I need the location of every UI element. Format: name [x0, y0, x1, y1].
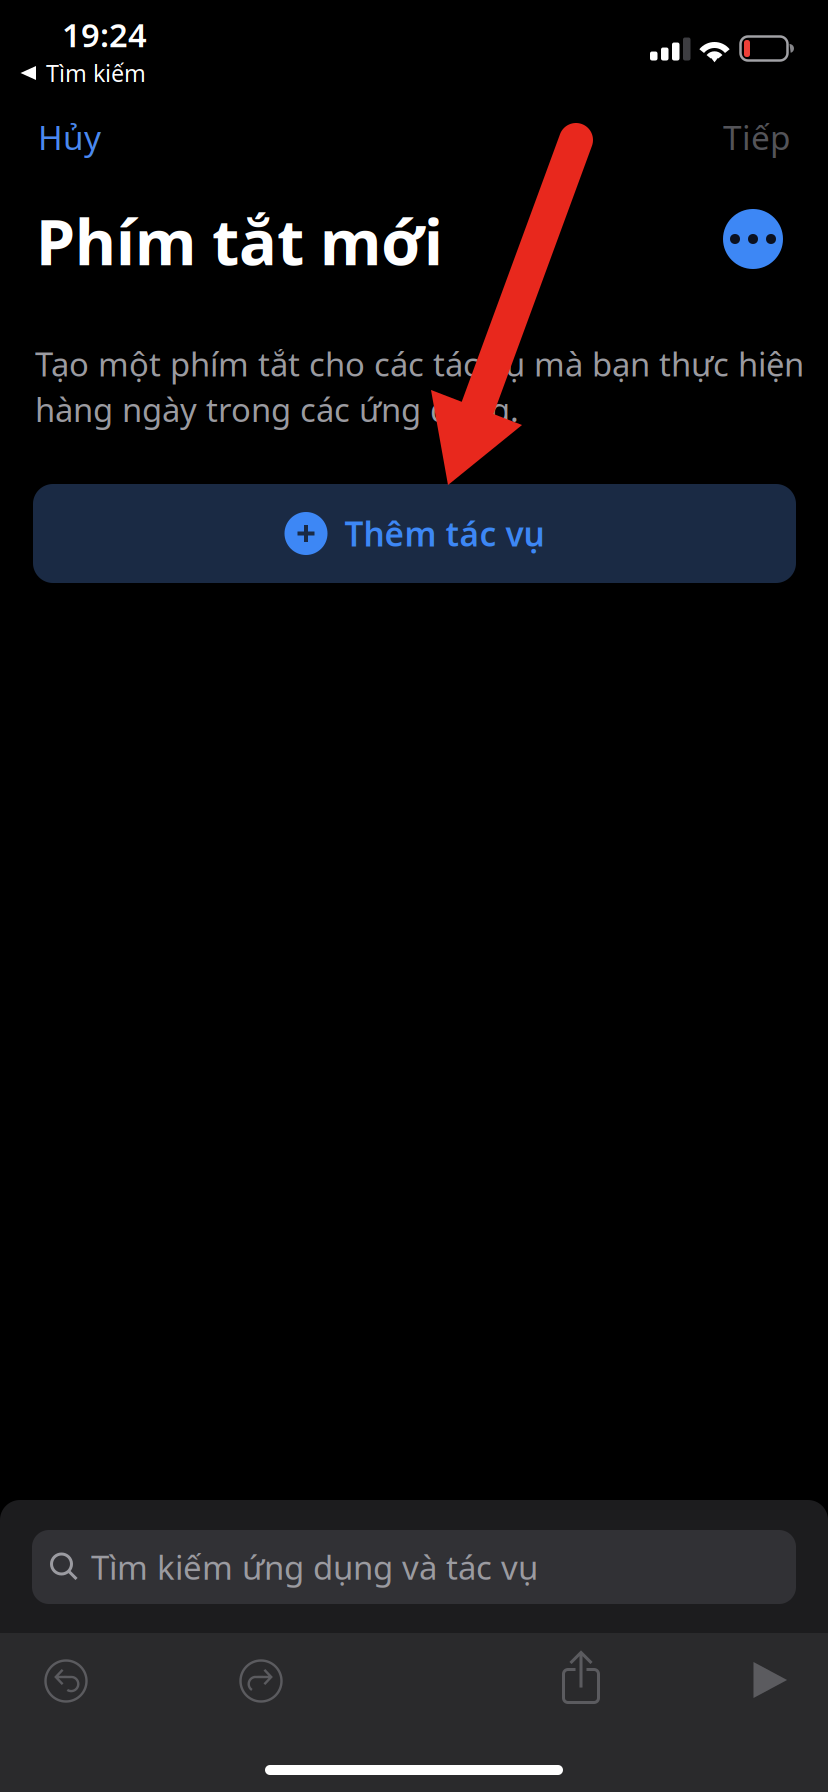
staticText: Phím tắt mới: [36, 199, 443, 283]
staticText: Tìm kiếm: [46, 57, 146, 88]
button[interactable]: Thêm tác vụ: [33, 484, 796, 583]
staticText: Tạo một phím tắt cho các tác vụ mà bạn t…: [35, 342, 804, 386]
staticText: hàng ngày trong các ứng dụng.: [35, 388, 519, 431]
button[interactable]: Hủy: [0, 107, 220, 167]
button[interactable]: Undo: [36, 1651, 96, 1711]
staticText: Thêm tác vụ: [344, 511, 544, 556]
staticText: Tiếp: [723, 115, 791, 159]
button[interactable]: Back to Tìm kiếm: [0, 56, 320, 90]
staticText: Tìm kiếm ứng dụng và tác vụ: [91, 1545, 538, 1589]
button[interactable]: More options: [711, 197, 795, 281]
staticText: Hủy: [38, 115, 101, 159]
button[interactable]: Redo: [231, 1651, 291, 1711]
button[interactable]: Run: [740, 1650, 800, 1710]
staticText: 19:24: [62, 13, 147, 56]
button[interactable]: Share: [551, 1647, 611, 1707]
button[interactable]: Tiếp: [608, 107, 828, 167]
